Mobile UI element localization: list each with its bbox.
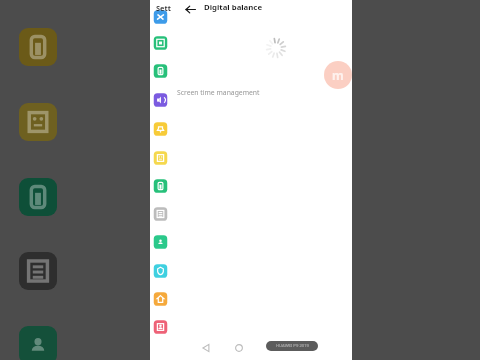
staticText: HUAWEI P9 2019 — [276, 343, 309, 349]
staticText: Digital balance — [204, 2, 263, 13]
staticText: Screen time management — [177, 88, 260, 97]
button[interactable] — [150, 0, 172, 360]
button[interactable]: Home — [231, 340, 247, 356]
button[interactable]: Back — [198, 340, 214, 356]
button[interactable]: Back — [180, 1, 200, 17]
staticText: m — [332, 67, 344, 83]
staticText: Sett — [156, 3, 171, 13]
